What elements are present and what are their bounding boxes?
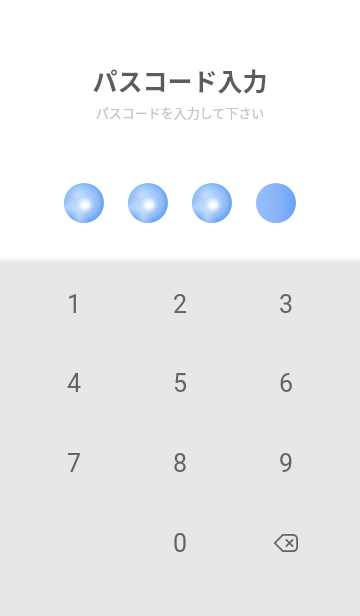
button[interactable]: Digit 7 [21,423,127,503]
button[interactable]: Digit 3 [233,264,339,344]
staticText: 9 [279,449,294,478]
staticText: 7 [67,449,82,478]
staticText: パスコードを入力して下さい [0,103,360,122]
staticText: 1 [67,290,82,319]
staticText: パスコード入力 [0,62,360,98]
button[interactable]: Digit 6 [233,343,339,423]
staticText: 3 [279,290,294,319]
button[interactable]: Digit 0 [127,503,233,583]
staticText: 0 [173,529,188,558]
button[interactable]: Digit 8 [127,423,233,503]
staticText: 5 [173,369,188,398]
staticText: 4 [67,369,82,398]
staticText: 6 [279,369,294,398]
button[interactable]: Digit 5 [127,343,233,423]
staticText: 2 [173,290,188,319]
button[interactable]: Delete [233,503,339,583]
button[interactable]: Digit 2 [127,264,233,344]
button[interactable]: Digit 9 [233,423,339,503]
button[interactable]: Digit 1 [21,264,127,344]
staticText: 8 [173,449,188,478]
button[interactable]: Digit 4 [21,343,127,423]
